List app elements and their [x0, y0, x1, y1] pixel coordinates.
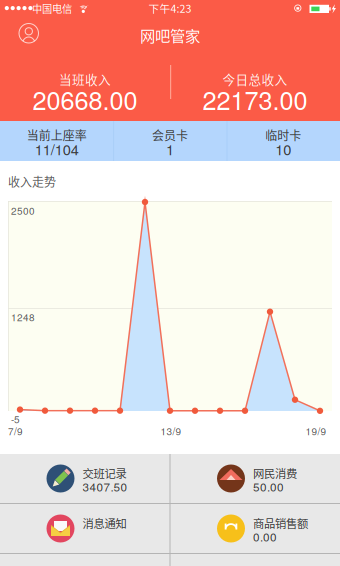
staticText: 交班记录	[82, 465, 126, 481]
button[interactable]: Account	[19, 23, 38, 43]
staticText: 商品销售额	[253, 515, 308, 531]
staticText: 中国电信	[32, 1, 72, 16]
staticText: 10	[275, 138, 291, 159]
staticText: -5	[11, 412, 20, 426]
staticText: 1	[166, 138, 174, 159]
staticText: 今日总收入	[222, 70, 287, 88]
staticText: 收入走势	[8, 173, 56, 190]
staticText: 会员卡	[152, 126, 188, 144]
staticText: 7/9	[8, 424, 23, 438]
staticText: 11/104	[35, 138, 79, 159]
staticText: 当前上座率	[27, 126, 87, 144]
staticText: 3407.50	[82, 478, 127, 495]
button[interactable]: 网民消费	[170, 454, 340, 503]
staticText: 消息通知	[82, 515, 126, 531]
staticText: 50.00	[253, 478, 284, 495]
staticText: 1248	[11, 310, 35, 324]
staticText: 22173.00	[202, 81, 307, 117]
button[interactable]: 商品销售额	[170, 504, 340, 553]
staticText: 临时卡	[265, 126, 301, 144]
staticText: 下午4:23	[148, 0, 191, 16]
button[interactable]: 消息通知	[0, 504, 169, 553]
staticText: 2500	[11, 203, 35, 218]
staticText: 19/9	[305, 424, 326, 438]
staticText: 网吧管家	[140, 24, 200, 46]
staticText: 当班收入	[59, 70, 111, 88]
button[interactable]: 交班记录	[0, 454, 169, 503]
staticText: 网民消费	[253, 465, 297, 481]
button[interactable]: 会员卡	[113, 121, 227, 161]
staticText: 13/9	[160, 424, 181, 438]
staticText: 20668.00	[32, 81, 137, 117]
staticText: 0.00	[253, 528, 277, 545]
button[interactable]: 临时卡	[227, 121, 340, 161]
button[interactable]: 当前上座率	[0, 121, 113, 161]
